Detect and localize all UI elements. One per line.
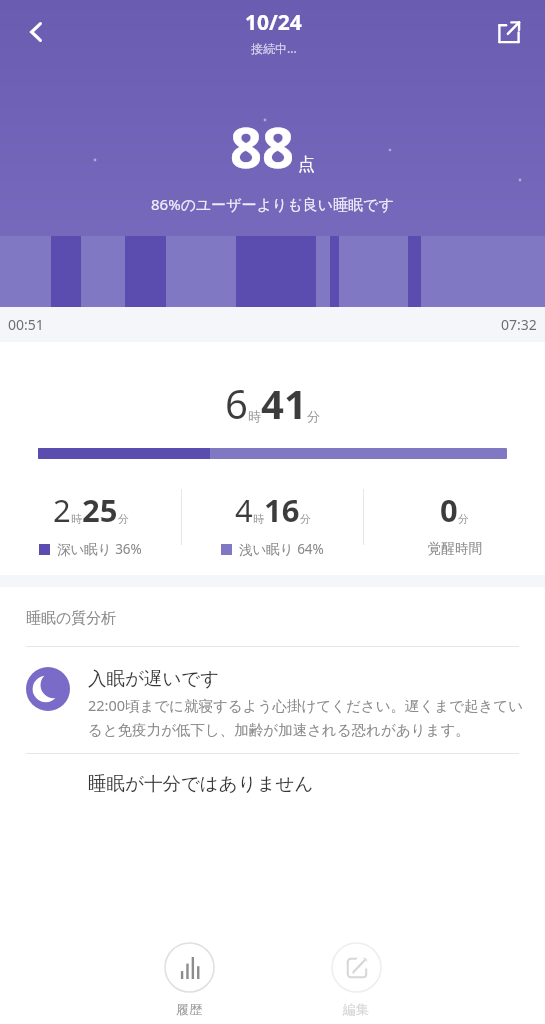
staticText: 分 bbox=[307, 408, 320, 424]
staticText: 時 bbox=[248, 408, 261, 424]
staticText: 入眠が遅いです bbox=[88, 667, 220, 690]
staticText: 時 bbox=[71, 512, 82, 526]
staticText: 時 bbox=[253, 512, 264, 526]
staticText: 分 bbox=[458, 512, 469, 526]
staticText: 22:00頃までに就寝するよう心掛けてください。遅くまで起きていると免疫力が低下… bbox=[88, 695, 525, 739]
staticText: 07:32 bbox=[501, 315, 537, 334]
staticText: 10/24 bbox=[245, 8, 302, 37]
staticText: 点 bbox=[298, 154, 315, 175]
staticText: 浅い眠り 64% bbox=[239, 540, 324, 558]
staticText: 睡眠が十分ではありません bbox=[88, 772, 314, 795]
staticText: 86%のユーザーよりも良い睡眠です bbox=[151, 194, 394, 214]
staticText: 41 bbox=[261, 376, 307, 430]
button[interactable]: 履歴 bbox=[143, 932, 235, 1017]
staticText: 00:51 bbox=[8, 315, 44, 334]
button[interactable]: Share bbox=[483, 6, 535, 58]
button[interactable]: Back bbox=[8, 4, 64, 60]
staticText: 6 bbox=[225, 376, 248, 430]
staticText: 深い眠り 36% bbox=[57, 540, 142, 558]
staticText: 覚醒時間 bbox=[428, 540, 482, 557]
staticText: 履歴 bbox=[176, 1001, 202, 1017]
staticText: 0 bbox=[440, 489, 458, 531]
button[interactable]: 入眠が遅いです bbox=[0, 647, 545, 753]
staticText: 睡眠の質分析 bbox=[26, 609, 117, 628]
button[interactable]: 編集 bbox=[310, 932, 402, 1017]
staticText: 16 bbox=[264, 489, 300, 531]
staticText: 編集 bbox=[343, 1001, 369, 1017]
staticText: 分 bbox=[300, 512, 311, 526]
staticText: 分 bbox=[118, 512, 129, 526]
staticText: 4 bbox=[235, 489, 253, 531]
staticText: 88 bbox=[230, 108, 295, 184]
staticText: 接続中... bbox=[251, 40, 297, 56]
button[interactable]: 睡眠が十分ではありません bbox=[0, 754, 545, 795]
staticText: 25 bbox=[82, 489, 118, 531]
staticText: 2 bbox=[53, 489, 71, 531]
